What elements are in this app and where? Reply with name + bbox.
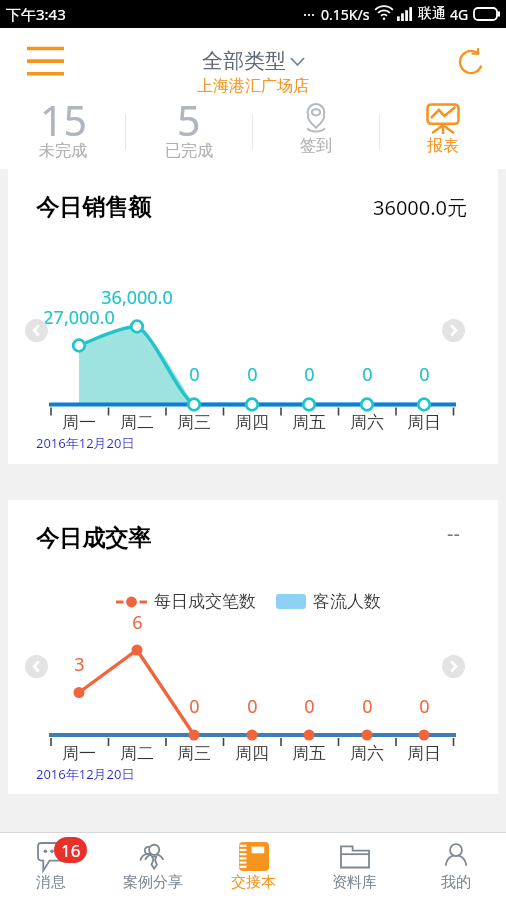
staticText: 周三 — [177, 412, 211, 433]
staticText: 16 — [61, 839, 81, 862]
button[interactable]: 15 — [0, 95, 126, 169]
staticText: 资料库 — [332, 873, 377, 892]
staticText: 上海港汇广场店 — [197, 76, 309, 96]
staticText: 今日销售额 — [36, 193, 151, 222]
staticText: ··· — [303, 4, 316, 24]
staticText: 下午3:43 — [6, 4, 66, 24]
staticText: 我的 — [441, 873, 471, 892]
staticText: 0 — [247, 694, 258, 719]
staticText: 已完成 — [165, 141, 213, 161]
button[interactable]: Refresh — [448, 39, 494, 85]
staticText: 27,000.0 — [43, 305, 115, 330]
button[interactable]: 报表 — [379, 95, 506, 169]
staticText: 案例分享 — [123, 873, 183, 892]
staticText: 2016年12月20日 — [36, 765, 135, 783]
staticText: 周日 — [407, 743, 441, 764]
staticText: 周二 — [120, 743, 154, 764]
staticText: 0 — [247, 362, 258, 387]
staticText: 0 — [189, 362, 200, 387]
staticText: 0 — [362, 694, 373, 719]
button[interactable]: 签到 — [252, 95, 379, 169]
staticText: 周六 — [350, 412, 384, 433]
staticText: 0 — [304, 362, 315, 387]
staticText: 0 — [304, 694, 315, 719]
staticText: 未完成 — [39, 141, 87, 161]
staticText: 周六 — [350, 743, 384, 764]
button[interactable]: Next — [442, 655, 465, 678]
staticText: 6 — [132, 610, 143, 635]
button[interactable]: Previous — [25, 655, 48, 678]
button[interactable]: Previous — [25, 319, 48, 342]
staticText: 36000.0元 — [373, 194, 467, 221]
button[interactable]: 案例分享 — [102, 833, 203, 900]
staticText: 周三 — [177, 743, 211, 764]
staticText: 周五 — [292, 412, 326, 433]
staticText: 今日成交率 — [36, 524, 151, 553]
staticText: -- — [447, 520, 460, 547]
button[interactable]: 交接本 — [203, 833, 304, 900]
button[interactable]: 全部类型 — [197, 48, 309, 96]
staticText: 每日成交笔数 — [154, 591, 256, 612]
staticText: 15 — [40, 92, 87, 148]
staticText: 周二 — [120, 412, 154, 433]
staticText: 全部类型 — [202, 48, 286, 74]
staticText: 周四 — [235, 743, 269, 764]
staticText: 0 — [419, 362, 430, 387]
staticText: 0 — [189, 694, 200, 719]
staticText: 5 — [177, 92, 201, 148]
staticText: 4G — [450, 5, 469, 24]
button[interactable]: 5 — [126, 95, 252, 169]
staticText: 36,000.0 — [101, 285, 173, 310]
staticText: 联通 — [418, 5, 446, 23]
button[interactable]: 16 — [0, 833, 102, 900]
staticText: 消息 — [36, 873, 66, 892]
staticText: 0 — [362, 362, 373, 387]
button[interactable]: 我的 — [405, 833, 506, 900]
staticText: 周四 — [235, 412, 269, 433]
button[interactable]: Menu — [21, 38, 69, 86]
staticText: 交接本 — [231, 873, 276, 892]
button[interactable]: 资料库 — [304, 833, 405, 900]
button[interactable]: Next — [442, 319, 465, 342]
staticText: 周一 — [62, 743, 96, 764]
staticText: 签到 — [300, 136, 332, 156]
staticText: 周五 — [292, 743, 326, 764]
staticText: 0 — [419, 694, 430, 719]
staticText: 周一 — [62, 412, 96, 433]
staticText: 0.15K/s — [321, 5, 370, 24]
staticText: 周日 — [407, 412, 441, 433]
staticText: 2016年12月20日 — [36, 434, 135, 452]
staticText: 3 — [74, 652, 85, 677]
staticText: 报表 — [427, 136, 459, 156]
staticText: 客流人数 — [313, 591, 381, 612]
